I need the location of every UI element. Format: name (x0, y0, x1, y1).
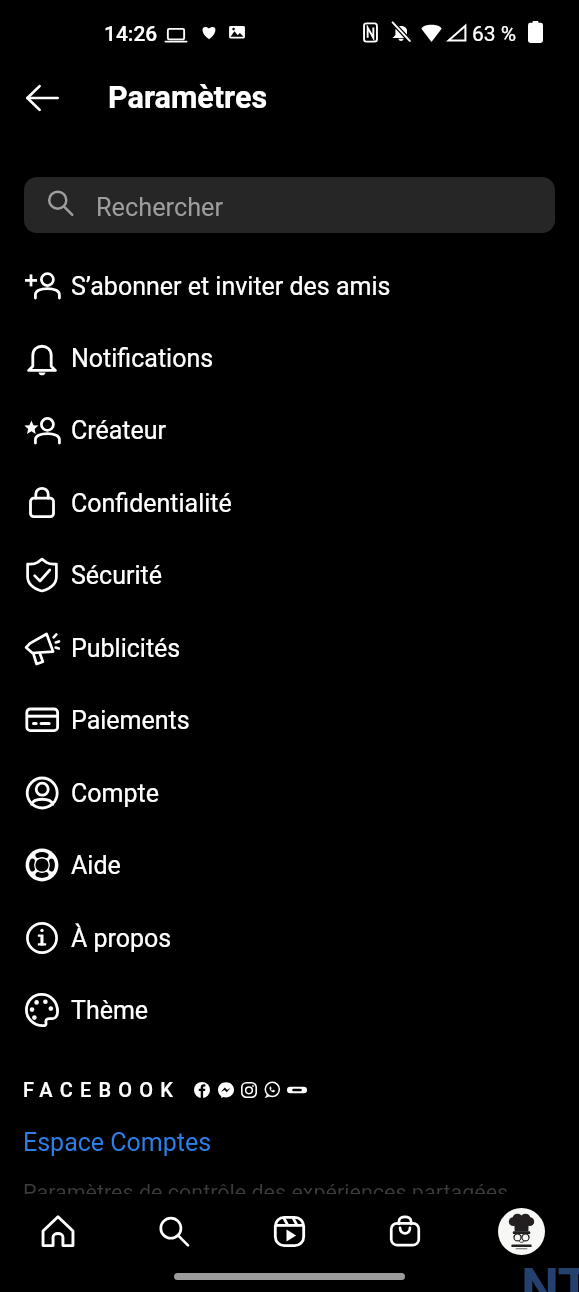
staticText: Publicités (71, 634, 181, 663)
staticText: À propos (71, 924, 172, 953)
button[interactable]: Espace Comptes (23, 1128, 212, 1157)
staticText: NT (521, 1256, 579, 1292)
button[interactable]: Recherche (115, 1203, 231, 1259)
staticText: Paiements (71, 706, 190, 735)
staticText: S’abonner et inviter des amis (71, 272, 391, 301)
button[interactable]: Boutique (347, 1203, 463, 1259)
staticText: Thème (71, 996, 149, 1025)
button[interactable]: Confidentialité (0, 467, 579, 539)
button[interactable]: Compte (0, 757, 579, 829)
staticText: Sécurité (71, 561, 162, 590)
staticText: Paramètres de contrôle des expériences p… (23, 1180, 509, 1205)
staticText: Paramètres (108, 80, 268, 116)
button[interactable]: Notifications (0, 322, 579, 394)
button[interactable]: Accueil (0, 1203, 115, 1259)
button[interactable]: Aide (0, 829, 579, 901)
staticText: Rechercher (96, 193, 224, 223)
button[interactable]: Thème (0, 974, 579, 1046)
button[interactable]: Profil (463, 1203, 579, 1259)
button[interactable]: Sécurité (0, 539, 579, 611)
button[interactable]: Reels (231, 1203, 347, 1259)
button[interactable]: À propos (0, 902, 579, 974)
staticText: Espace Comptes (23, 1128, 212, 1157)
button[interactable]: Retour (14, 75, 70, 121)
button[interactable]: S’abonner et inviter des amis (0, 250, 579, 322)
staticText: Compte (71, 779, 159, 808)
staticText: 63 % (472, 22, 517, 47)
staticText: Créateur (71, 416, 167, 445)
staticText: FACEBOOK (23, 1078, 181, 1101)
button[interactable]: Paiements (0, 684, 579, 756)
button[interactable]: Créateur (0, 394, 579, 466)
button[interactable]: Rechercher (24, 177, 555, 233)
staticText: Notifications (71, 344, 214, 373)
button[interactable]: Publicités (0, 612, 579, 684)
staticText: 14:26 (104, 22, 158, 47)
staticText: Aide (71, 851, 121, 880)
staticText: Confidentialité (71, 489, 232, 518)
